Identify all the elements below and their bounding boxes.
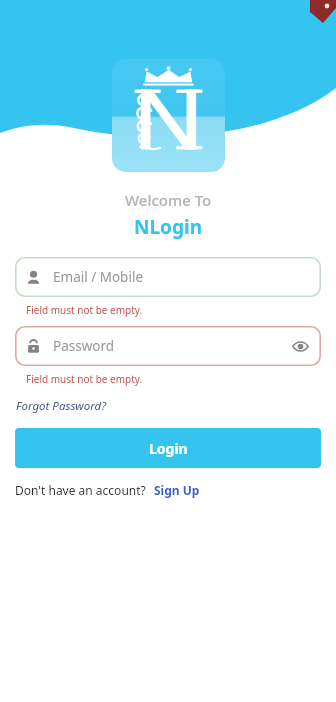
button[interactable]: Show password — [290, 336, 310, 356]
button[interactable]: Forgot Password? — [15, 396, 108, 416]
other: User — [26, 270, 41, 285]
staticText: Login — [149, 439, 188, 458]
button[interactable]: NLogin logo — [112, 59, 225, 172]
staticText: Welcome To — [125, 190, 212, 210]
staticText: NLogin — [134, 214, 202, 240]
staticText: Email / Mobile — [53, 268, 144, 286]
staticText: Password — [53, 337, 115, 355]
button[interactable]: Login — [15, 428, 321, 468]
button[interactable]: Sign Up — [153, 480, 201, 500]
button[interactable]: Password — [15, 326, 321, 366]
button[interactable]: User — [15, 257, 321, 297]
staticText: Forgot Password? — [16, 398, 107, 414]
staticText: Sign Up — [154, 482, 200, 498]
other: Password — [26, 339, 41, 354]
staticText: Field must not be empty. — [26, 303, 143, 317]
staticText: Field must not be empty. — [26, 372, 143, 386]
staticText: Don't have an account? — [15, 482, 146, 498]
